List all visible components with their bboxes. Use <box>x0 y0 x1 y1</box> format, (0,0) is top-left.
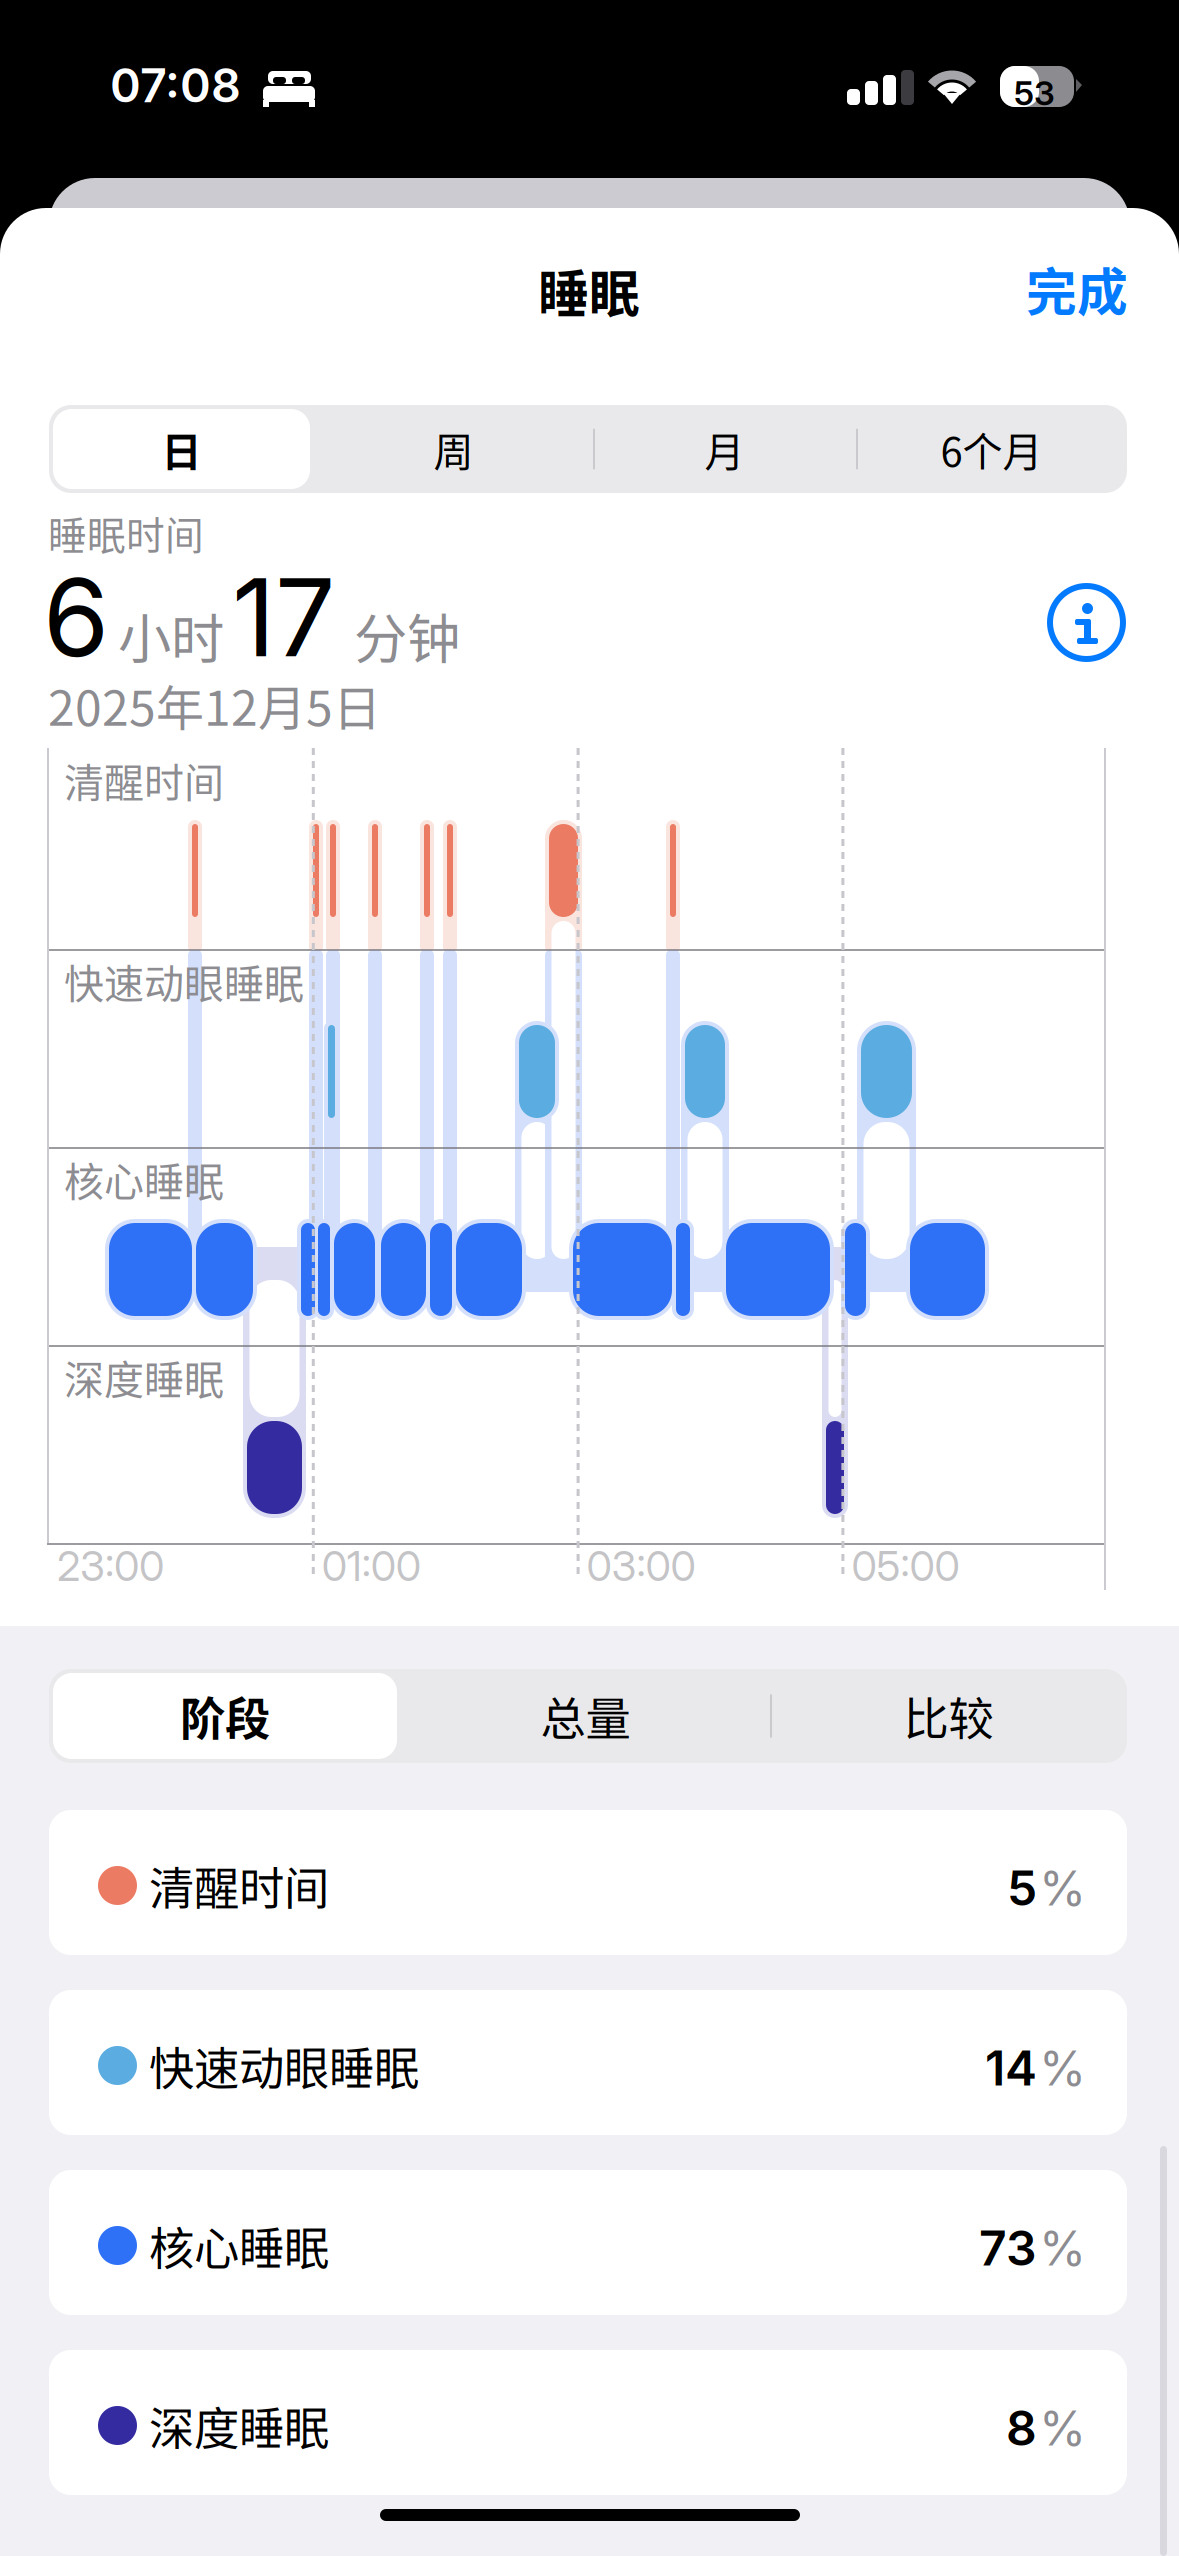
staticText: 日 <box>161 420 201 478</box>
staticText: 05:00 <box>851 1541 959 1591</box>
staticText: 总量 <box>540 1683 630 1749</box>
staticText: % <box>1039 1859 1086 1917</box>
staticText: 完成 <box>1026 252 1128 326</box>
staticText: 小时 <box>118 597 224 674</box>
staticText: 8 <box>1006 2399 1037 2457</box>
button[interactable]: 日 <box>49 405 314 493</box>
button[interactable]: 总量 <box>401 1669 770 1763</box>
staticText: 比较 <box>903 1683 993 1749</box>
staticText: 快速动眼睡眠 <box>149 2033 419 2099</box>
staticText: 23:00 <box>57 1541 164 1591</box>
staticText: 睡眠 <box>538 254 640 327</box>
staticText: 清醒时间 <box>149 1853 329 1919</box>
staticText: 快速动眼睡眠 <box>64 952 304 1010</box>
staticText: % <box>1039 2219 1086 2277</box>
staticText: 17 <box>232 553 335 682</box>
button[interactable]: 核心睡眠 <box>49 2170 1127 2315</box>
staticText: 5 <box>1007 1859 1037 1917</box>
staticText: 周 <box>433 420 473 478</box>
staticText: 6 <box>43 553 109 682</box>
button[interactable]: 比较 <box>770 1669 1127 1763</box>
staticText: 分钟 <box>354 597 460 674</box>
staticText: 阶段 <box>180 1683 270 1749</box>
staticText: 03:00 <box>587 1541 696 1591</box>
button[interactable]: 清醒时间 <box>49 1810 1127 1955</box>
button[interactable]: 月 <box>593 405 856 493</box>
staticText: 深度睡眠 <box>64 1348 224 1406</box>
button[interactable]: 关于睡眠时间 <box>1035 571 1139 675</box>
staticText: % <box>1039 2399 1086 2457</box>
staticText: 6个月 <box>940 420 1042 478</box>
button[interactable]: 深度睡眠 <box>49 2350 1127 2495</box>
button[interactable]: 6个月 <box>856 405 1127 493</box>
staticText: 2025年12月5日 <box>48 670 381 739</box>
staticText: 核心睡眠 <box>149 2213 329 2279</box>
staticText: 73 <box>979 2219 1037 2277</box>
button[interactable]: 快速动眼睡眠 <box>49 1990 1127 2135</box>
staticText: 月 <box>704 420 744 478</box>
staticText: 深度睡眠 <box>149 2393 329 2459</box>
staticText: 14 <box>985 2039 1037 2097</box>
staticText: 01:00 <box>322 1541 421 1591</box>
button[interactable]: 阶段 <box>49 1669 401 1763</box>
staticText: 53 <box>1014 73 1055 113</box>
button[interactable]: 周 <box>314 405 593 493</box>
staticText: 07:08 <box>110 57 241 113</box>
staticText: 睡眠时间 <box>48 505 204 561</box>
staticText: % <box>1039 2039 1086 2097</box>
staticText: 核心睡眠 <box>64 1150 224 1208</box>
button[interactable]: 完成 <box>948 241 1128 337</box>
staticText: 清醒时间 <box>64 751 224 809</box>
